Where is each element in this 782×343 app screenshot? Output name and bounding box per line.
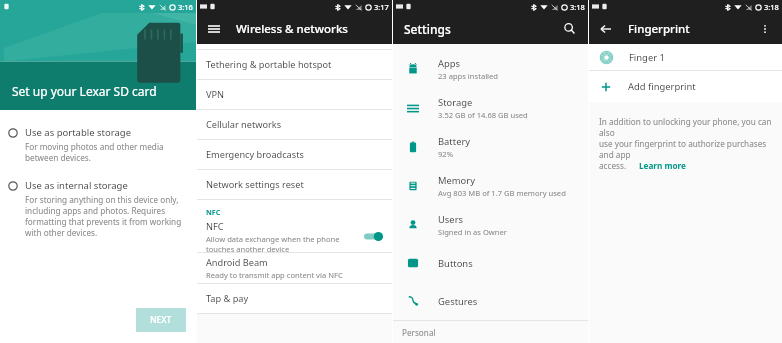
staticText: Add fingerprint <box>628 80 696 93</box>
button[interactable]: Network settings reset <box>197 170 392 199</box>
button[interactable]: Battery <box>393 127 588 166</box>
button[interactable]: Use as portable storage <box>0 120 196 165</box>
staticText: Tethering & portable hotspot <box>206 58 332 71</box>
staticText: VPN <box>206 88 225 101</box>
button[interactable]: Add fingerprint <box>589 71 782 102</box>
staticText: Cellular networks <box>206 118 282 131</box>
staticText: In addition to unlocking your phone, you… <box>599 116 772 171</box>
staticText: Tap & pay <box>206 292 249 305</box>
button[interactable]: NEXT <box>136 308 186 332</box>
staticText: Use as internal storage <box>25 179 128 192</box>
staticText: 3:18 <box>764 2 779 12</box>
staticText: Storage <box>438 96 473 109</box>
button[interactable]: Storage <box>393 88 588 127</box>
staticText: Network settings reset <box>206 178 304 191</box>
staticText: Use as portable storage <box>25 126 132 139</box>
button[interactable]: Apps <box>393 49 588 88</box>
button[interactable]: NFC <box>197 220 392 252</box>
staticText: Battery <box>438 135 471 148</box>
staticText: For moving photos and other media betwee… <box>25 141 164 163</box>
button[interactable]: Buttons <box>393 244 588 282</box>
button[interactable]: Learn more <box>639 160 686 171</box>
button[interactable]: Search <box>562 21 577 36</box>
staticText: NFC <box>206 220 224 233</box>
staticText: Learn more <box>639 160 686 171</box>
staticText: Set up your Lexar SD card <box>12 83 157 99</box>
staticText: 3:17 <box>374 2 389 12</box>
staticText: 3:18 <box>570 2 585 12</box>
button[interactable]: Use as internal storage <box>0 173 196 240</box>
staticText: Android Beam <box>206 256 268 269</box>
button[interactable]: Gestures <box>393 282 588 320</box>
button[interactable]: Finger 1 <box>589 44 782 70</box>
button[interactable]: Emergency broadcasts <box>197 140 392 169</box>
staticText: Personal <box>402 327 436 337</box>
button[interactable] <box>364 231 383 242</box>
staticText: NFC <box>206 207 221 217</box>
staticText: Signed in as Owner <box>438 227 507 237</box>
button[interactable]: Android Beam <box>197 253 392 283</box>
staticText: Emergency broadcasts <box>206 148 304 161</box>
staticText: Finger 1 <box>629 51 665 64</box>
staticText: Settings <box>404 21 562 37</box>
staticText: Fingerprint <box>628 21 758 37</box>
staticText: 23 apps installed <box>438 71 499 81</box>
button[interactable]: VPN <box>197 80 392 109</box>
button[interactable]: Cellular networks <box>197 110 392 139</box>
staticText: Users <box>438 213 464 226</box>
staticText: Allow data exchange when the phone touch… <box>206 234 340 252</box>
staticText: Apps <box>438 57 461 70</box>
button[interactable]: Open navigation menu <box>207 22 221 36</box>
button[interactable]: Tethering & portable hotspot <box>197 50 392 79</box>
staticText: Wireless & networks <box>236 21 348 37</box>
staticText: Gestures <box>438 295 478 308</box>
button[interactable]: Back <box>599 22 613 36</box>
staticText: NEXT <box>150 314 172 326</box>
button[interactable]: Tap & pay <box>197 284 392 313</box>
staticText: 3:16 <box>178 2 193 12</box>
staticText: 92% <box>438 149 453 159</box>
staticText: Ready to transmit app content via NFC <box>206 270 343 280</box>
staticText: Memory <box>438 174 475 187</box>
staticText: For storing anything on this device only… <box>25 194 182 238</box>
button[interactable]: More options <box>758 22 772 36</box>
button[interactable]: Users <box>393 205 588 244</box>
button[interactable]: Memory <box>393 166 588 205</box>
staticText: Buttons <box>438 257 473 270</box>
staticText: 3.52 GB of 14.68 GB used <box>438 110 528 120</box>
staticText: Avg 803 MB of 1.7 GB memory used <box>438 188 566 198</box>
